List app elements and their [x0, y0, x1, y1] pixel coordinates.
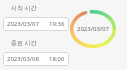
staticText: 18:00 — [49, 55, 65, 63]
staticText: 시작 시간 — [11, 4, 37, 12]
staticText: 2023/03/07 — [7, 20, 39, 28]
staticText: 종료 시간 — [11, 39, 37, 47]
staticText: 2023/03/08 — [7, 55, 39, 63]
staticText: 19:36 — [49, 20, 65, 28]
staticText: 2023/03/07 — [77, 25, 109, 33]
other: Progress — [70, 10, 116, 48]
button[interactable]: 2023/03/07 — [3, 17, 69, 31]
button[interactable]: 2023/03/08 — [3, 52, 69, 66]
